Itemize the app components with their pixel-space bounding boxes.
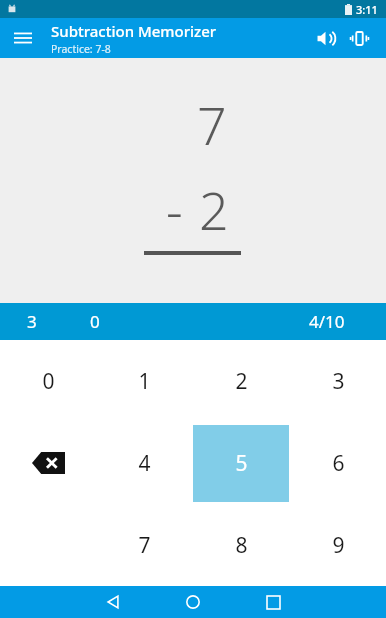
button[interactable]: 6 xyxy=(290,425,386,502)
staticText: 0 xyxy=(90,310,100,333)
button[interactable]: Recent apps xyxy=(248,586,298,618)
button[interactable]: Sound xyxy=(308,21,342,55)
staticText: Practice: 7-8 xyxy=(51,42,111,56)
button[interactable]: Open navigation menu xyxy=(6,21,40,55)
staticText: 5 xyxy=(235,449,248,478)
staticText: 1 xyxy=(138,367,151,396)
button[interactable]: 3 xyxy=(290,343,386,420)
button[interactable]: Backspace xyxy=(20,438,76,488)
staticText: 2 xyxy=(199,174,229,245)
button[interactable]: 0 xyxy=(1,343,96,420)
button[interactable]: Vibrate xyxy=(342,21,376,55)
staticText: 8 xyxy=(235,531,248,560)
button[interactable]: 5 xyxy=(193,425,289,502)
button[interactable]: 7 xyxy=(97,507,192,584)
staticText: 4/10 xyxy=(309,310,345,333)
staticText: 6 xyxy=(332,449,345,478)
staticText: 7 xyxy=(138,531,151,560)
button[interactable]: Back xyxy=(88,586,138,618)
staticText: Subtraction Memorizer xyxy=(51,21,217,41)
staticText: 3 xyxy=(332,367,345,396)
staticText: 2 xyxy=(235,367,248,396)
button[interactable]: 9 xyxy=(290,507,386,584)
staticText: 0 xyxy=(42,367,55,396)
staticText: 3 xyxy=(27,310,37,333)
button[interactable]: Home xyxy=(168,586,218,618)
staticText: 3:11 xyxy=(356,2,378,17)
button[interactable]: 1 xyxy=(97,343,192,420)
button[interactable]: 2 xyxy=(193,343,289,420)
staticText: 9 xyxy=(332,531,345,560)
button[interactable]: 4 xyxy=(97,425,192,502)
button[interactable]: 8 xyxy=(193,507,289,584)
staticText: 4 xyxy=(138,449,151,478)
staticText: - xyxy=(166,174,183,245)
staticText: 7 xyxy=(197,89,227,160)
